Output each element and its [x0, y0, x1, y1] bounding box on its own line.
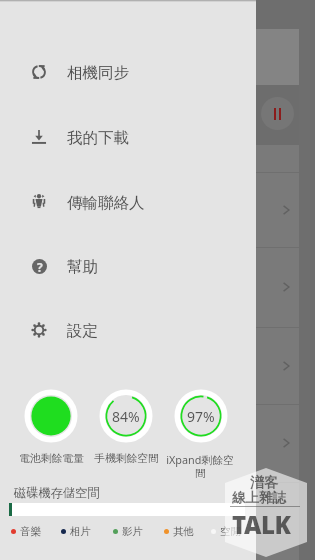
staticText: ?: [37, 259, 43, 274]
button[interactable]: Stat: [99, 389, 153, 443]
button[interactable]: Pause: [274, 108, 281, 120]
button[interactable]: 空閒: [211, 524, 241, 538]
staticText: 傳輸聯絡人: [67, 193, 145, 213]
button[interactable]: 其他: [164, 524, 194, 538]
button[interactable]: 設定: [0, 309, 256, 353]
staticText: 相片: [70, 525, 91, 538]
staticText: 手機剩餘空間: [94, 452, 159, 466]
staticText: iXpand剩餘空: [166, 452, 234, 467]
button[interactable]: 我的下載: [0, 116, 256, 160]
staticText: TALK: [232, 508, 291, 541]
button[interactable]: Storage usage: [9, 503, 245, 516]
staticText: 影片: [122, 525, 143, 538]
staticText: 空閒: [220, 525, 241, 538]
staticText: 音樂: [20, 525, 41, 538]
staticText: 相機同步: [67, 63, 129, 83]
staticText: 幫助: [67, 257, 98, 277]
button[interactable]: 傳輸聯絡人: [0, 181, 256, 225]
button[interactable]: 相機同步: [0, 51, 256, 95]
staticText: 84%: [112, 407, 140, 426]
button[interactable]: List item: [256, 405, 299, 482]
staticText: 設定: [67, 321, 98, 341]
staticText: 97%: [187, 407, 215, 426]
button[interactable]: 影片: [113, 524, 143, 538]
staticText: 我的下載: [67, 128, 129, 148]
button[interactable]: 相片: [61, 524, 91, 538]
staticText: 間: [195, 467, 206, 481]
button[interactable]: Stat: [174, 389, 228, 443]
staticText: 線上雜誌: [232, 489, 286, 506]
staticText: 磁碟機存儲空間: [14, 485, 100, 500]
button[interactable]: ?: [0, 245, 256, 289]
staticText: 電池剩餘電量: [19, 452, 84, 466]
staticText: 潽客: [250, 474, 278, 492]
button[interactable]: Stat: [24, 389, 78, 443]
staticText: 其他: [173, 525, 194, 538]
button[interactable]: 音樂: [11, 524, 41, 538]
